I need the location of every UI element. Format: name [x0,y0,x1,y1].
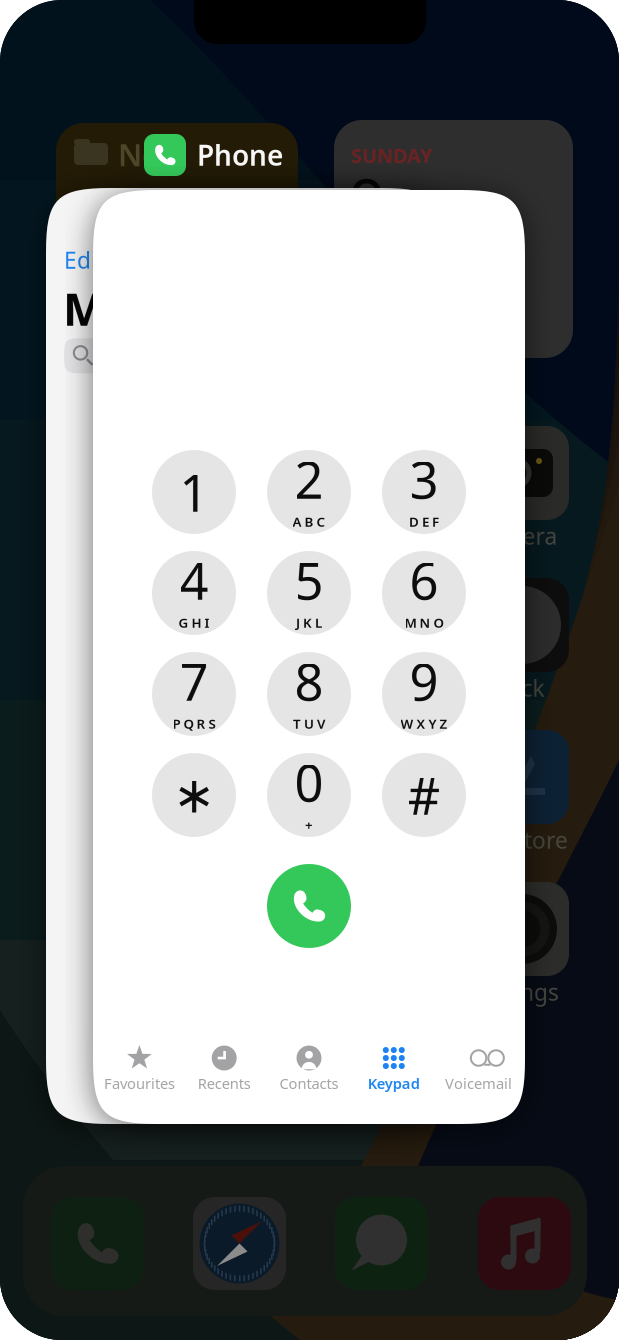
staticText: W X Y Z [400,715,447,732]
button[interactable]: 7 [152,652,236,736]
button[interactable]: 3 [382,450,466,534]
staticText: Phone [197,136,283,174]
staticText: 6 [409,546,438,614]
staticText: 5 [294,546,323,614]
button[interactable]: ∗ [152,753,236,837]
staticText: T U V [293,715,325,732]
button[interactable]: Contacts [267,1042,351,1096]
button[interactable]: 9 [382,652,466,736]
staticText: M N O [404,614,443,631]
button[interactable]: 5 [267,551,351,635]
button[interactable]: Favourites [97,1042,182,1096]
staticText: 7 [179,647,208,715]
button[interactable]: 6 [382,551,466,635]
staticText: # [407,761,440,829]
staticText: 2 [294,445,323,513]
staticText: Camera [474,521,557,551]
button[interactable]: 8 [267,652,351,736]
staticText: + [305,816,313,833]
staticText: No [118,134,161,175]
button[interactable]: 4 [152,551,236,635]
button[interactable]: 2 [267,450,351,534]
staticText: 8 [294,647,323,715]
staticText: Favourites [104,1073,175,1093]
staticText: 0 [294,748,323,816]
button[interactable]: Keypad [351,1042,436,1096]
staticText: G H I [178,614,209,631]
staticText: Keypad [368,1073,420,1093]
button[interactable]: Voicemail [436,1042,521,1096]
staticText: Voicemail [445,1073,512,1093]
staticText: 9 [409,647,438,715]
staticText: D E F [409,513,439,530]
button[interactable]: # [382,753,466,837]
staticText: M [63,278,106,338]
staticText: 1 [179,458,208,526]
staticText: Clock [487,673,544,703]
staticText: J K L [296,614,322,631]
staticText: 4 [179,546,208,614]
staticText: Edit [64,245,105,275]
staticText: P Q R S [172,715,215,732]
staticText: Recents [198,1073,251,1093]
button[interactable]: Call [267,864,351,948]
staticText: Contacts [279,1073,338,1093]
button[interactable]: 0 [267,753,351,837]
staticText: ∗ [173,766,215,824]
staticText: 9 [349,158,386,243]
staticText: App Store [464,825,568,855]
staticText: SUNDAY [351,142,433,169]
staticText: A B C [292,513,325,530]
button[interactable]: 1 [152,450,236,534]
button[interactable]: Recents [182,1042,267,1096]
staticText: Settings [473,977,559,1007]
staticText: 3 [409,445,438,513]
